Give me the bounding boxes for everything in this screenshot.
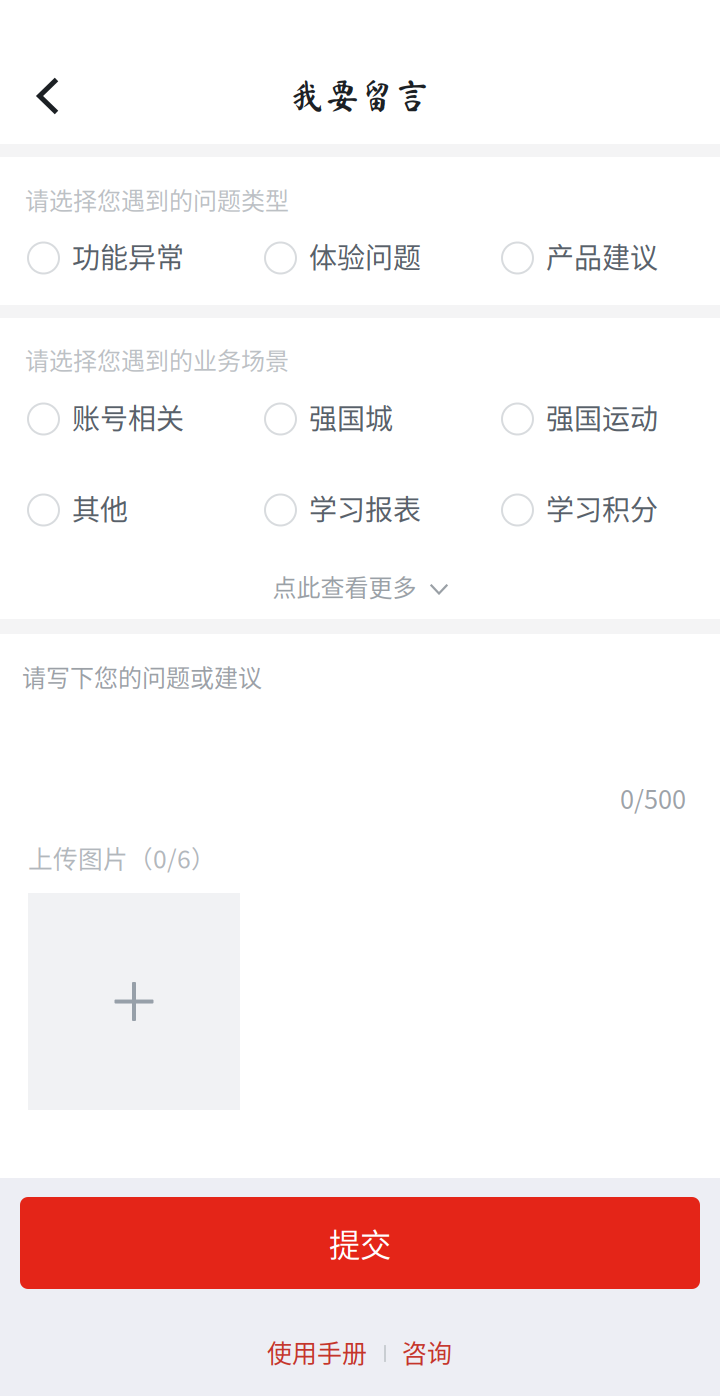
button[interactable]: 强国运动 [502,396,702,442]
staticText: 体验问题 [309,236,421,276]
staticText: 其他 [72,488,128,528]
staticText: 点此查看更多 [272,569,416,603]
button[interactable]: 强国城 [265,396,465,442]
button[interactable]: 账号相关 [28,396,228,442]
staticText: 上传图片（0/6） [28,840,216,876]
staticText: 学习报表 [309,488,421,528]
button[interactable]: 功能异常 [28,235,228,281]
staticText: 提交 [329,1220,391,1266]
staticText: 我要留言 [290,78,430,112]
button[interactable]: Add photo [28,893,240,1110]
button[interactable]: 其他 [28,487,228,533]
staticText: 0/500 [620,780,686,816]
button[interactable]: 点此查看更多 [254,564,454,608]
button[interactable]: 体验问题 [265,235,465,281]
button[interactable]: 咨询 [393,1330,461,1374]
staticText: 使用手册 [267,1334,367,1370]
button[interactable]: 学习积分 [502,487,702,533]
button[interactable]: 请写下您的问题或建议 [22,659,694,771]
button[interactable]: 学习报表 [265,487,465,533]
staticText: 请写下您的问题或建议 [22,659,262,694]
staticText: 功能异常 [72,236,184,276]
button[interactable]: 使用手册 [258,1330,376,1374]
staticText: 学习积分 [546,488,658,528]
staticText: 产品建议 [546,236,658,276]
button[interactable]: Back [10,58,86,134]
staticText: 请选择您遇到的问题类型 [25,182,289,217]
button[interactable]: 产品建议 [502,235,702,281]
staticText: 咨询 [402,1334,452,1370]
staticText: 请选择您遇到的业务场景 [25,342,289,377]
staticText: 强国城 [309,397,393,437]
button[interactable]: 提交 [20,1197,700,1289]
staticText: 账号相关 [72,397,184,437]
staticText: 强国运动 [546,397,658,437]
